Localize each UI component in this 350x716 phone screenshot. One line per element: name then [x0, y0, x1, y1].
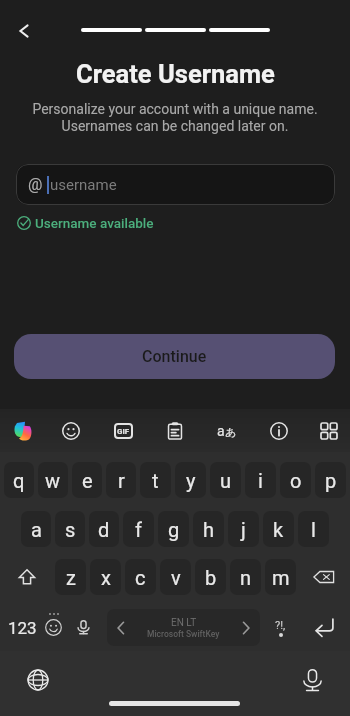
button[interactable]: Emoji: [50, 409, 92, 452]
button[interactable]: a: [21, 511, 51, 547]
button[interactable]: Emoji: [41, 609, 65, 646]
staticText: b: [205, 566, 217, 589]
button[interactable]: Back: [5, 12, 42, 49]
staticText: n: [240, 566, 252, 589]
staticText: g: [168, 518, 180, 541]
staticText: GIF: [117, 427, 130, 436]
button[interactable]: 123: [3, 609, 41, 646]
button[interactable]: u: [210, 462, 241, 498]
button[interactable]: k: [263, 511, 294, 547]
button[interactable]: Backspace: [298, 559, 350, 595]
staticText: d: [98, 518, 110, 541]
staticText: あ: [225, 425, 237, 439]
staticText: Username available: [35, 215, 154, 231]
staticText: i: [258, 469, 263, 492]
button[interactable]: z: [55, 559, 86, 595]
button[interactable]: Copilot: [2, 409, 44, 452]
staticText: Continue: [142, 347, 207, 366]
button[interactable]: r: [106, 462, 136, 498]
button[interactable]: v: [160, 559, 191, 595]
button[interactable]: Translate: [206, 409, 248, 452]
staticText: q: [13, 469, 25, 492]
button[interactable]: g: [158, 511, 189, 547]
staticText: e: [82, 469, 93, 492]
staticText: u: [220, 469, 232, 492]
button[interactable]: Punctuation: [266, 609, 294, 646]
button[interactable]: p: [315, 462, 346, 498]
button[interactable]: f: [123, 511, 154, 547]
staticText: a: [217, 423, 225, 439]
button[interactable]: w: [38, 462, 68, 498]
staticText: r: [118, 469, 125, 492]
staticText: x: [101, 566, 111, 589]
button[interactable]: Change keyboard: [22, 664, 54, 696]
button[interactable]: n: [230, 559, 261, 595]
staticText: k: [273, 518, 284, 541]
staticText: Create Username: [76, 59, 275, 89]
staticText: username: [50, 176, 117, 194]
staticText: w: [45, 469, 61, 492]
button[interactable]: i: [245, 462, 276, 498]
staticText: @: [28, 175, 43, 194]
button[interactable]: b: [195, 559, 226, 595]
staticText: v: [171, 566, 181, 589]
button[interactable]: m: [265, 559, 296, 595]
button[interactable]: Info: [258, 409, 300, 452]
button[interactable]: Voice input: [71, 609, 95, 646]
staticText: s: [65, 518, 76, 541]
button[interactable]: l: [298, 511, 329, 547]
staticText: p: [325, 469, 337, 492]
staticText: EN LT: [171, 617, 197, 629]
button[interactable]: h: [193, 511, 224, 547]
staticText: l: [311, 518, 316, 541]
button[interactable]: c: [125, 559, 156, 595]
staticText: c: [135, 566, 146, 589]
staticText: Microsoft SwiftKey: [147, 629, 220, 639]
button[interactable]: GIF: [102, 409, 144, 452]
button[interactable]: s: [55, 511, 85, 547]
button[interactable]: Shift: [0, 559, 53, 595]
staticText: h: [203, 518, 215, 541]
button[interactable]: More: [308, 409, 350, 452]
staticText: 123: [8, 618, 37, 638]
staticText: a: [31, 518, 42, 541]
staticText: Personalize your account with a unique n…: [32, 101, 318, 135]
button[interactable]: @: [16, 164, 335, 205]
button[interactable]: o: [280, 462, 311, 498]
button[interactable]: j: [228, 511, 259, 547]
button[interactable]: q: [4, 462, 34, 498]
button[interactable]: Enter: [309, 609, 339, 646]
button[interactable]: t: [140, 462, 171, 498]
button[interactable]: d: [89, 511, 119, 547]
button[interactable]: Continue: [14, 334, 335, 379]
staticText: m: [272, 566, 290, 589]
button[interactable]: Clipboard: [154, 409, 196, 452]
button[interactable]: EN LT: [107, 609, 260, 646]
staticText: f: [135, 518, 142, 541]
button[interactable]: y: [175, 462, 206, 498]
staticText: y: [186, 469, 196, 492]
staticText: t: [152, 469, 159, 492]
staticText: o: [290, 469, 302, 492]
button[interactable]: x: [90, 559, 121, 595]
staticText: j: [241, 518, 246, 541]
staticText: z: [66, 566, 76, 589]
button[interactable]: Voice input: [296, 664, 328, 696]
staticText: ?!,: [275, 619, 286, 632]
button[interactable]: e: [72, 462, 102, 498]
